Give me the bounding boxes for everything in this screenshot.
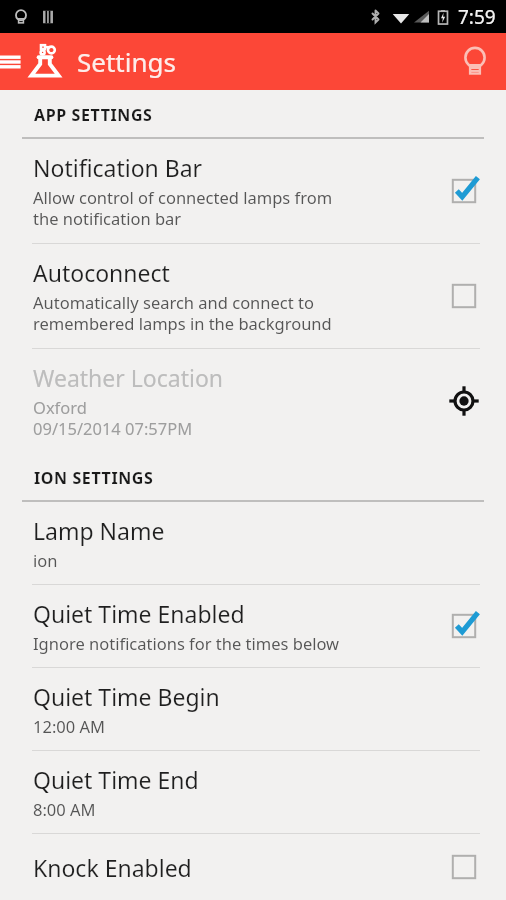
- staticText: ION SETTINGS: [34, 467, 154, 489]
- button[interactable]: Knock Enabled: [0, 834, 506, 900]
- button[interactable]: Toggle lamp: [444, 33, 506, 90]
- button[interactable]: Notification Bar: [0, 139, 506, 244]
- button[interactable]: Quiet Time Begin: [0, 668, 506, 751]
- button[interactable]: Quiet Time Enabled: [0, 585, 506, 668]
- button[interactable]: Autoconnect: [0, 244, 506, 349]
- staticText: Lamp Name: [33, 515, 165, 546]
- staticText: APP SETTINGS: [34, 104, 153, 126]
- staticText: Quiet Time Enabled: [33, 598, 245, 629]
- staticText: Knock Enabled: [33, 852, 192, 883]
- button[interactable]: Unchecked: [447, 850, 481, 884]
- staticText: Automatically search and connect to reme…: [33, 291, 332, 335]
- button[interactable]: Quiet Time End: [0, 751, 506, 834]
- button[interactable]: Checked: [447, 174, 481, 208]
- staticText: Settings: [77, 44, 176, 79]
- staticText: Quiet Time End: [33, 764, 199, 795]
- staticText: Allow control of connected lamps from th…: [33, 186, 333, 230]
- button[interactable]: Lamp Name: [0, 502, 506, 585]
- button[interactable]: Weather Location: [0, 349, 506, 453]
- staticText: 8:00 AM: [33, 798, 96, 820]
- staticText: Quiet Time Begin: [33, 681, 220, 712]
- staticText: Autoconnect: [33, 257, 170, 288]
- button[interactable]: Use current location: [444, 381, 484, 421]
- staticText: Oxford 09/15/2014 07:57PM: [33, 396, 193, 440]
- staticText: 7:59: [458, 4, 496, 30]
- button[interactable]: Open navigation drawer: [0, 33, 22, 90]
- staticText: Ignore notifications for the times below: [33, 632, 340, 654]
- staticText: ion: [33, 549, 58, 571]
- staticText: Notification Bar: [33, 152, 203, 183]
- button[interactable]: Checked: [447, 609, 481, 643]
- staticText: Weather Location: [33, 362, 224, 393]
- staticText: 12:00 AM: [33, 715, 105, 737]
- button[interactable]: Unchecked: [447, 279, 481, 313]
